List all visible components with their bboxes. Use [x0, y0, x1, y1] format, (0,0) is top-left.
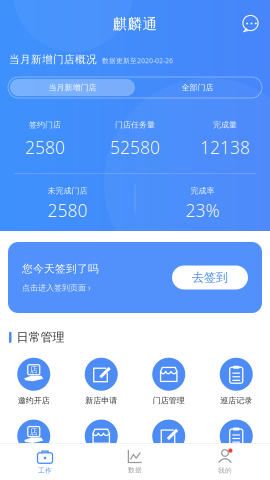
staticText: 当月新增门店	[48, 83, 96, 92]
staticText: 我的	[218, 466, 232, 475]
staticText: 数据	[128, 466, 142, 474]
staticText: 签约门店	[29, 120, 61, 130]
staticText: 12138	[200, 136, 250, 159]
staticText: 2580	[47, 199, 87, 222]
staticText: 23%	[185, 199, 219, 222]
button[interactable]	[67, 420, 135, 468]
staticText: 去签到	[192, 270, 228, 285]
staticText: 邀约开店	[18, 396, 50, 405]
button[interactable]: 工作	[0, 443, 90, 480]
staticText: 您今天签到了吗	[22, 262, 99, 275]
staticText: 麒麟通	[112, 15, 157, 33]
staticText: 当月新增门店概况	[9, 53, 97, 66]
button[interactable]: 店	[0, 358, 67, 405]
button[interactable]: 巡店记录	[202, 358, 270, 405]
staticText: 完成量	[213, 120, 237, 130]
staticText: 52580	[110, 136, 160, 159]
staticText: 新店申请	[85, 396, 117, 405]
button[interactable]: 我的	[180, 443, 270, 480]
staticText: 门店任务量	[115, 120, 155, 130]
staticText: 2580	[25, 136, 65, 159]
button[interactable]: 新店申请	[67, 358, 135, 405]
staticText: 全部门店	[181, 83, 213, 92]
staticText: 数据更新至2020-02-26	[102, 56, 173, 65]
staticText: 工作	[38, 466, 52, 475]
staticText: 未完成门店	[47, 186, 87, 196]
button[interactable]: 店	[0, 420, 67, 468]
staticText: 完成率	[190, 186, 214, 196]
button[interactable]: 数据	[90, 443, 180, 480]
button[interactable]	[135, 420, 202, 468]
button[interactable]: 当月新增门店	[10, 79, 135, 96]
button[interactable]: 您今天签到了吗	[8, 242, 262, 313]
staticText: 店	[30, 427, 38, 437]
button[interactable]: Messages	[241, 14, 261, 34]
staticText: 店	[30, 365, 38, 375]
staticText: 点击进入签到页面 ›	[22, 282, 90, 293]
button[interactable]	[202, 420, 270, 468]
staticText: 门店管理	[153, 396, 185, 405]
staticText: 日常管理	[16, 330, 64, 345]
button[interactable]: 门店管理	[135, 358, 202, 405]
button[interactable]: 全部门店	[135, 79, 260, 96]
staticText: 巡店记录	[220, 396, 252, 405]
